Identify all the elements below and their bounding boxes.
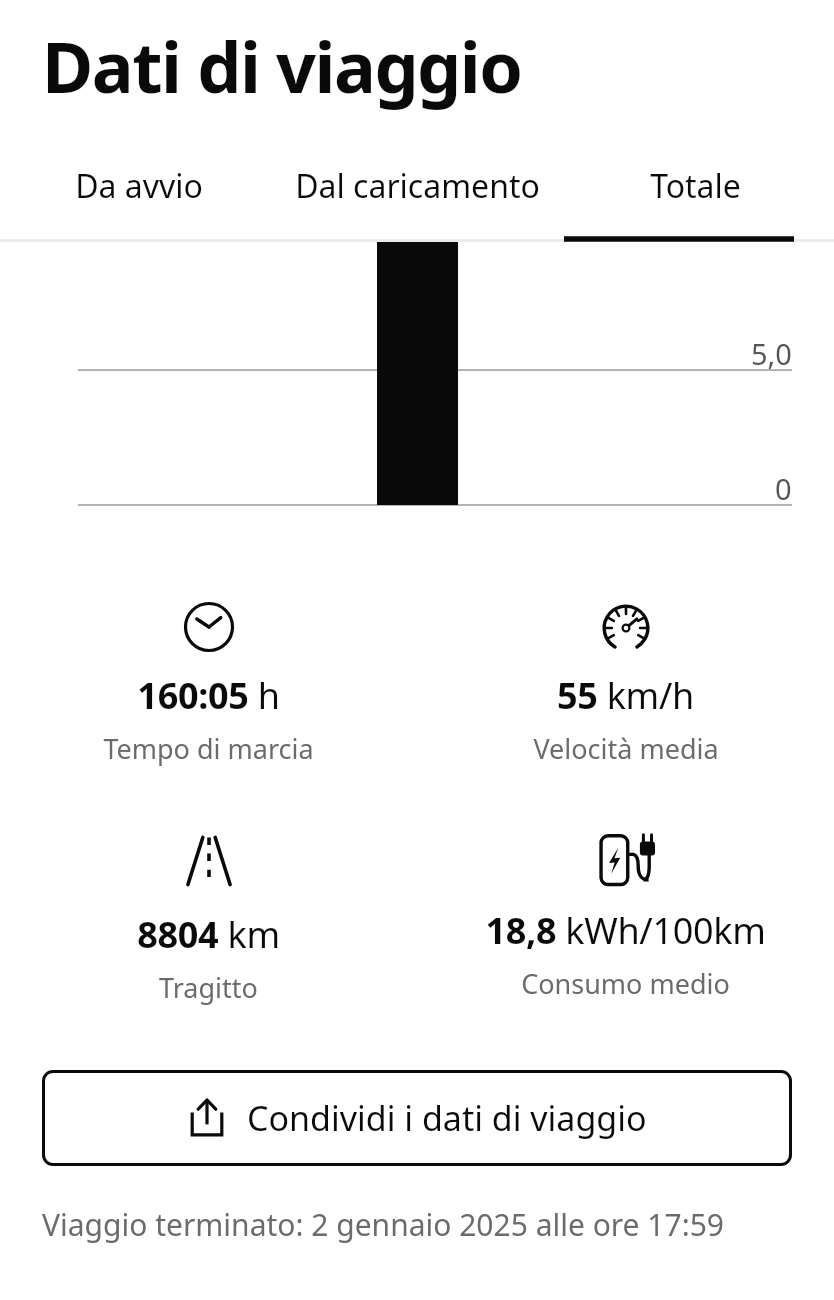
staticText: Totale (650, 164, 741, 208)
staticText: Viaggio terminato: 2 gennaio 2025 alle o… (42, 1204, 725, 1245)
staticText: Dal caricamento (295, 164, 540, 208)
button[interactable]: Totale (556, 130, 834, 242)
staticText: Dati di viaggio (42, 18, 522, 113)
staticText: Velocità media (533, 730, 719, 767)
staticText: 18,8 kWh/100km (485, 906, 766, 955)
staticText: Tempo di marcia (103, 730, 314, 767)
staticText: 5,0 (751, 334, 792, 373)
staticText: 55 km/h (557, 671, 694, 720)
button[interactable]: Tempo di marcia (0, 597, 417, 771)
button[interactable]: Tragitto (0, 826, 417, 1010)
other: Velocità media (600, 601, 652, 653)
other: Tempo di marcia (183, 601, 235, 653)
staticText: Condividi i dati di viaggio (247, 1095, 647, 1141)
staticText: 8804 km (137, 910, 280, 959)
staticText: Consumo medio (521, 965, 730, 1002)
button[interactable]: Dal caricamento (278, 130, 556, 242)
staticText: Da avvio (75, 164, 203, 208)
other: Tragitto (178, 830, 240, 892)
staticText: 0 (775, 469, 792, 508)
button[interactable]: Consumo medio (417, 826, 834, 1006)
other: Consumo medio (597, 830, 655, 888)
button[interactable]: Da avvio (0, 130, 278, 242)
button[interactable]: Velocità media (417, 597, 834, 771)
staticText: Tragitto (159, 969, 258, 1006)
staticText: 160:05 h (137, 671, 280, 720)
button[interactable]: Condividi i dati di viaggio (42, 1070, 792, 1166)
